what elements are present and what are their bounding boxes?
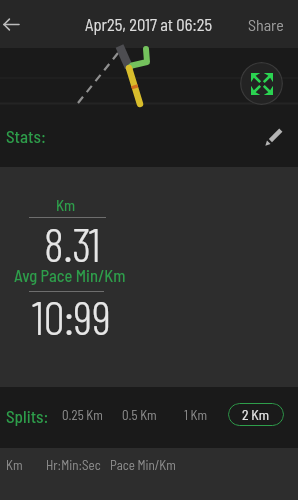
staticText: Km xyxy=(56,196,76,214)
button[interactable]: Share xyxy=(234,1,298,48)
staticText: Avg Pace Min/Km xyxy=(14,265,126,285)
staticText: Apr25, 2017 at 06:25 xyxy=(85,14,213,34)
staticText: Hr:Min:Sec xyxy=(46,457,101,473)
staticText: 0.25 Km xyxy=(62,407,103,423)
button[interactable]: Edit xyxy=(256,119,291,154)
staticText: 1 Km xyxy=(184,407,208,423)
staticText: 2 Km xyxy=(242,406,270,423)
button[interactable]: Stats: xyxy=(2,120,50,152)
button[interactable]: 2 Km xyxy=(228,403,284,426)
staticText: 10:99 xyxy=(32,288,111,344)
button[interactable]: Splits: xyxy=(2,400,53,432)
staticText: Share xyxy=(248,15,284,34)
staticText: Km xyxy=(6,457,23,473)
staticText: Pace Min/Km xyxy=(110,457,176,473)
button[interactable]: 0.25 Km xyxy=(56,402,109,428)
staticText: Splits: xyxy=(6,406,49,426)
button[interactable]: 0.5 Km xyxy=(116,402,163,428)
button[interactable]: Fullscreen xyxy=(240,62,283,105)
staticText: 8.31 xyxy=(44,215,101,271)
staticText: Stats: xyxy=(6,126,46,146)
button[interactable]: Back xyxy=(0,7,28,41)
staticText: 0.5 Km xyxy=(122,407,157,423)
button[interactable]: 1 Km xyxy=(178,402,214,428)
